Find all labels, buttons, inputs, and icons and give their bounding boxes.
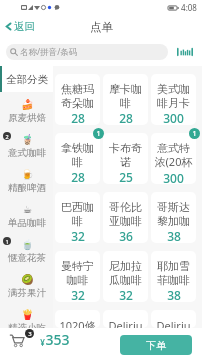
button[interactable]: 🧋 xyxy=(0,127,53,162)
button[interactable]: 焦糖玛奇朵咖啡 xyxy=(55,74,100,125)
button[interactable]: 卡布奇诺 xyxy=(103,133,148,184)
staticText: 🧋 xyxy=(21,134,34,146)
button[interactable]: 1020修道院 xyxy=(55,310,100,328)
staticText: 美式咖啡月卡 xyxy=(153,82,194,110)
button[interactable]: 拿铁咖啡 xyxy=(55,133,100,184)
staticText: 300 xyxy=(163,170,184,184)
button[interactable]: Scan barcode xyxy=(177,44,193,60)
button[interactable]: 巴西咖啡 xyxy=(55,192,100,243)
staticText: 353 xyxy=(45,330,70,349)
staticText: 巴西咖啡 xyxy=(57,200,98,228)
button[interactable]: 哥斯达黎加咖啡 xyxy=(151,192,196,243)
button[interactable]: 返回 xyxy=(0,15,41,38)
button[interactable]: Shopping cart xyxy=(8,329,35,348)
staticText: 耶加雪菲咖啡 xyxy=(153,259,194,287)
staticText: 36 xyxy=(119,228,133,243)
staticText: ¥ xyxy=(40,337,45,348)
staticText: 28 xyxy=(119,110,133,125)
button[interactable]: Delirium xyxy=(103,310,148,328)
staticText: 3 xyxy=(28,330,32,338)
staticText: 1020修道院 xyxy=(57,318,98,328)
button[interactable]: 🍰 xyxy=(0,92,53,127)
staticText: 32 xyxy=(71,228,85,243)
staticText: Delirium xyxy=(105,318,146,328)
staticText: ☕ xyxy=(23,204,32,216)
staticText: 焦糖玛奇朵咖啡 xyxy=(57,82,98,110)
staticText: 🍺 xyxy=(21,169,34,181)
staticText: 全部分类 xyxy=(6,73,48,86)
staticText: 满芬果汁 xyxy=(8,287,46,299)
staticText: 38 xyxy=(167,287,181,302)
button[interactable]: 摩卡咖啡 xyxy=(103,74,148,125)
staticText: 摩卡咖啡 xyxy=(105,82,146,110)
button[interactable]: 🍟 xyxy=(0,302,53,328)
button[interactable]: 下单 xyxy=(120,335,192,355)
staticText: 下单 xyxy=(146,339,166,352)
staticText: 1 xyxy=(192,129,197,139)
staticText: 哥伦比亚咖啡 xyxy=(105,200,146,228)
button[interactable]: 意式特浓(20杯 xyxy=(151,133,196,184)
staticText: 38 xyxy=(167,228,181,243)
staticText: 精选小吃 xyxy=(8,322,46,328)
staticText: 尼加拉瓜咖啡 xyxy=(105,259,146,287)
staticText: 哥斯达黎加咖啡 xyxy=(153,200,194,228)
button[interactable]: 耶加雪菲咖啡 xyxy=(151,251,196,302)
staticText: 曼特宁咖啡 xyxy=(57,259,98,287)
staticText: 意式咖啡 xyxy=(8,147,46,159)
staticText: 1 xyxy=(5,238,9,245)
staticText: 32 xyxy=(119,287,133,302)
staticText: 意式特浓(20杯 xyxy=(153,141,194,170)
staticText: 点单 xyxy=(90,20,113,34)
staticText: Delirium xyxy=(153,318,194,328)
staticText: 原麦烘焙 xyxy=(8,112,46,124)
button[interactable]: 🍺 xyxy=(0,162,53,197)
staticText: 惬意花茶 xyxy=(8,252,46,264)
staticText: 4:08 xyxy=(181,2,197,13)
staticText: 名称/拼音/条码 xyxy=(20,46,78,58)
staticText: 28 xyxy=(71,110,85,125)
staticText: 2 xyxy=(5,133,9,140)
staticText: 🍵 xyxy=(21,239,34,251)
button[interactable]: Delirium xyxy=(151,310,196,328)
staticText: 精酿啤酒 xyxy=(8,182,46,194)
staticText: 卡布奇诺 xyxy=(105,141,146,169)
staticText: 🍰 xyxy=(21,99,34,111)
staticText: 🍟 xyxy=(21,309,34,321)
button[interactable]: 🥝 xyxy=(0,267,53,302)
button[interactable]: ☕ xyxy=(0,197,53,232)
button[interactable]: 哥伦比亚咖啡 xyxy=(103,192,148,243)
staticText: 🥝 xyxy=(21,274,34,286)
button[interactable]: 名称/拼音/条码 xyxy=(6,44,168,60)
button[interactable]: 🍵 xyxy=(0,232,53,267)
staticText: 32 xyxy=(71,287,85,302)
button[interactable]: 曼特宁咖啡 xyxy=(55,251,100,302)
button[interactable]: 美式咖啡月卡 xyxy=(151,74,196,125)
staticText: 25 xyxy=(119,169,133,184)
button[interactable]: 尼加拉瓜咖啡 xyxy=(103,251,148,302)
staticText: 28 xyxy=(71,169,85,184)
staticText: 单品咖啡 xyxy=(8,217,46,229)
staticText: 返回 xyxy=(14,20,35,33)
button[interactable]: 全部分类 xyxy=(0,66,53,92)
staticText: 1 xyxy=(96,129,101,139)
staticText: 拿铁咖啡 xyxy=(57,141,98,169)
staticText: 300 xyxy=(163,110,184,125)
